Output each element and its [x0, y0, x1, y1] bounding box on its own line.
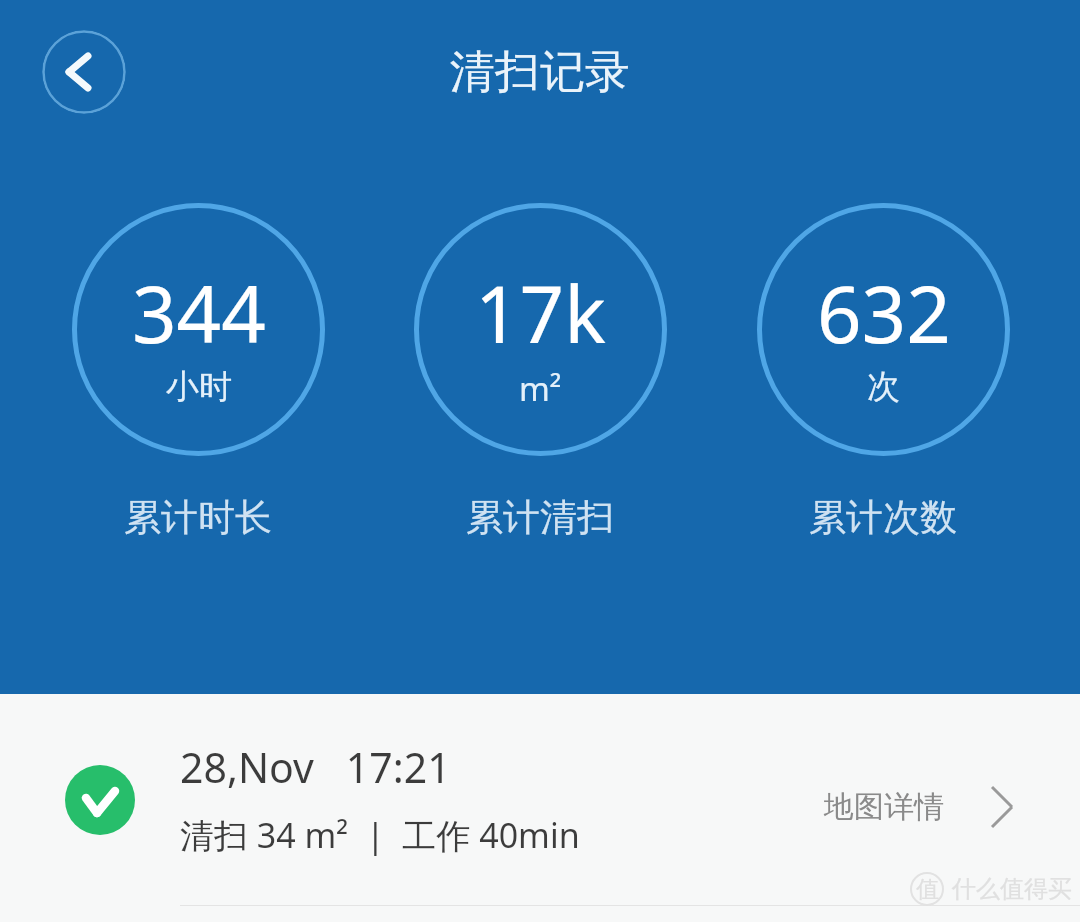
staticText: 清扫 34 m² | 工作 40min: [180, 812, 580, 858]
staticText: m²: [519, 366, 562, 411]
staticText: 小时: [166, 366, 232, 408]
staticText: 344: [132, 260, 266, 366]
staticText: 什么值得买: [952, 874, 1072, 904]
staticText: 清扫记录: [450, 44, 630, 101]
staticText: 累计时长: [124, 494, 272, 541]
staticText: 28,Nov 17:21: [180, 739, 451, 795]
staticText: 地图详情: [824, 788, 944, 826]
staticText: 632: [817, 260, 951, 366]
staticText: 累计清扫: [466, 494, 614, 541]
button[interactable]: Back: [42, 30, 126, 114]
staticText: 值: [916, 875, 939, 904]
staticText: 17k: [475, 260, 606, 366]
button[interactable]: 28,Nov 17:21: [0, 694, 1080, 906]
staticText: 次: [867, 366, 900, 408]
staticText: 累计次数: [809, 494, 957, 541]
button[interactable]: 地图详情: [804, 771, 1014, 843]
